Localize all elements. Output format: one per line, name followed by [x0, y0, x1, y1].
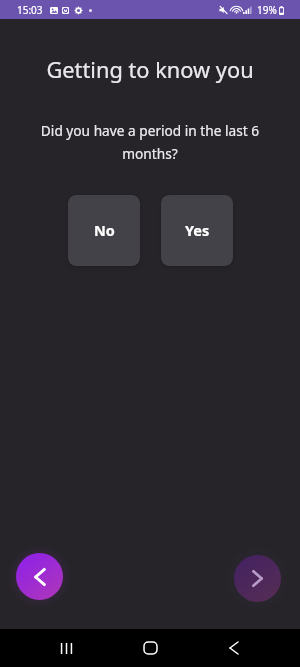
button[interactable]: Back	[214, 629, 254, 667]
staticText: Getting to know you	[0, 55, 300, 85]
staticText: 19%	[257, 3, 277, 17]
staticText: No	[94, 220, 115, 240]
staticText: 15:03	[17, 3, 43, 17]
button[interactable]: Yes	[161, 195, 233, 266]
button[interactable]: Home	[130, 629, 170, 667]
button[interactable]: Previous	[8, 545, 71, 608]
button[interactable]: Recents	[46, 629, 86, 667]
staticText: Yes	[185, 220, 210, 240]
staticText: Did you have a period in the last 6 mont…	[34, 121, 266, 163]
button[interactable]: No	[68, 195, 140, 266]
button[interactable]: Next	[226, 547, 289, 610]
